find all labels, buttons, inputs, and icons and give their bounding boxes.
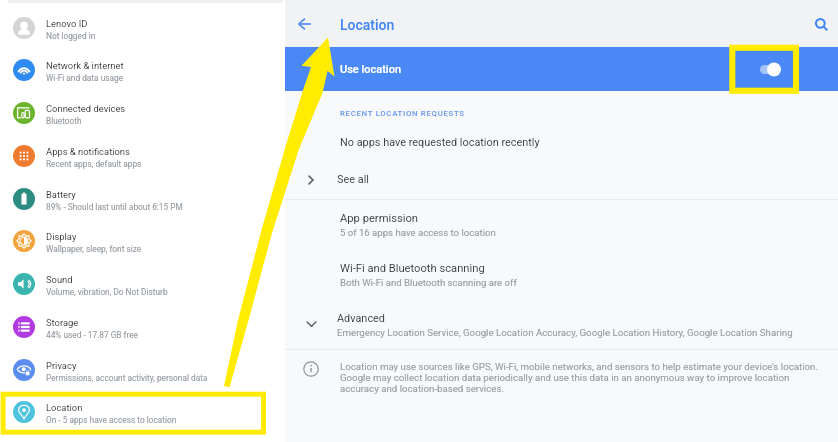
staticText: See all [337, 173, 369, 186]
staticText: Recent apps, default apps [46, 159, 142, 169]
staticText: Volume, vibration, Do Not Disturb [46, 287, 168, 297]
button[interactable]: Advanced [285, 306, 838, 344]
staticText: Bluetooth [46, 116, 82, 126]
button[interactable]: App permission [285, 211, 838, 255]
staticText: On - 5 apps have access to location [46, 415, 177, 425]
staticText: 89% - Should last until about 6:15 PM [46, 202, 183, 212]
staticText: Privacy [46, 360, 77, 371]
staticText: Sound [46, 274, 73, 285]
button[interactable]: Back [289, 8, 320, 39]
staticText: Network & internet [46, 60, 124, 71]
staticText: Advanced [337, 312, 385, 325]
button[interactable]: Search [807, 10, 837, 40]
staticText: Emergency Location Service, Google Locat… [337, 327, 793, 338]
staticText: Wi-Fi and Bluetooth scanning [340, 262, 485, 275]
staticText: Wallpaper, sleep, font size [46, 244, 142, 254]
staticText: Connected devices [46, 103, 126, 114]
staticText: Location may use sources like GPS, Wi-Fi… [340, 361, 822, 394]
button[interactable]: Wi-Fi and Bluetooth scanning [285, 261, 838, 305]
button[interactable]: See all [285, 165, 838, 193]
staticText: Lenovo ID [46, 18, 88, 29]
staticText: Wi-Fi and data usage [46, 73, 124, 83]
button[interactable]: Use location [285, 47, 838, 91]
staticText: Display [46, 231, 77, 242]
button[interactable]: Sound [0, 262, 285, 305]
staticText: 5 of 16 apps have access to location [340, 227, 496, 238]
staticText: 44% used - 17.87 GB free [46, 330, 138, 340]
staticText: No apps have requested location recently [340, 136, 540, 149]
button[interactable]: Display [0, 219, 285, 262]
staticText: Permissions, account activity, personal … [46, 373, 208, 383]
staticText: Not logged in [46, 31, 96, 41]
staticText: Location [46, 402, 83, 413]
button[interactable]: Lenovo ID [0, 6, 285, 49]
staticText: Use location [340, 63, 402, 76]
staticText: Both Wi-Fi and Bluetooth scanning are of… [340, 277, 517, 288]
staticText: App permission [340, 212, 419, 225]
button[interactable]: Storage [0, 305, 285, 348]
button[interactable]: Apps & notifications [0, 134, 285, 177]
button[interactable]: Network & internet [0, 48, 285, 91]
staticText: Storage [46, 317, 79, 328]
staticText: Location [340, 17, 395, 33]
button[interactable]: Location [0, 390, 285, 433]
button[interactable]: Battery [0, 177, 285, 220]
staticText: Apps & notifications [46, 146, 130, 157]
button[interactable]: Connected devices [0, 91, 285, 134]
staticText: RECENT LOCATION REQUESTS [340, 109, 465, 118]
staticText: Battery [46, 189, 76, 200]
button[interactable]: Privacy [0, 348, 285, 391]
